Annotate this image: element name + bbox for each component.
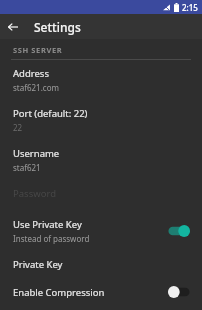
staticText: Use Private Key [13,218,82,231]
staticText: staf621 [13,162,41,173]
button[interactable]: Use Private Key [0,211,202,251]
button[interactable]: Back [0,14,25,39]
staticText: Enable Compression [13,286,105,299]
staticText: Username [13,147,60,160]
staticText: SSH SERVER [13,45,63,55]
button[interactable]: Address [0,60,202,100]
staticText: Port (default: 22) [13,107,88,120]
staticText: 2:15 [182,2,198,13]
staticText: staf621.com [13,82,59,93]
staticText: Password [13,187,56,200]
staticText: Settings [34,19,81,35]
staticText: 22 [13,122,23,133]
button[interactable]: Enable Compression [0,278,202,306]
staticText: Private Key [13,258,63,271]
button[interactable]: Private Key [0,251,202,278]
staticText: Instead of password [13,233,90,244]
button[interactable]: Username [0,140,202,180]
button[interactable]: Port (default: 22) [0,100,202,140]
staticText: Address [13,67,49,80]
